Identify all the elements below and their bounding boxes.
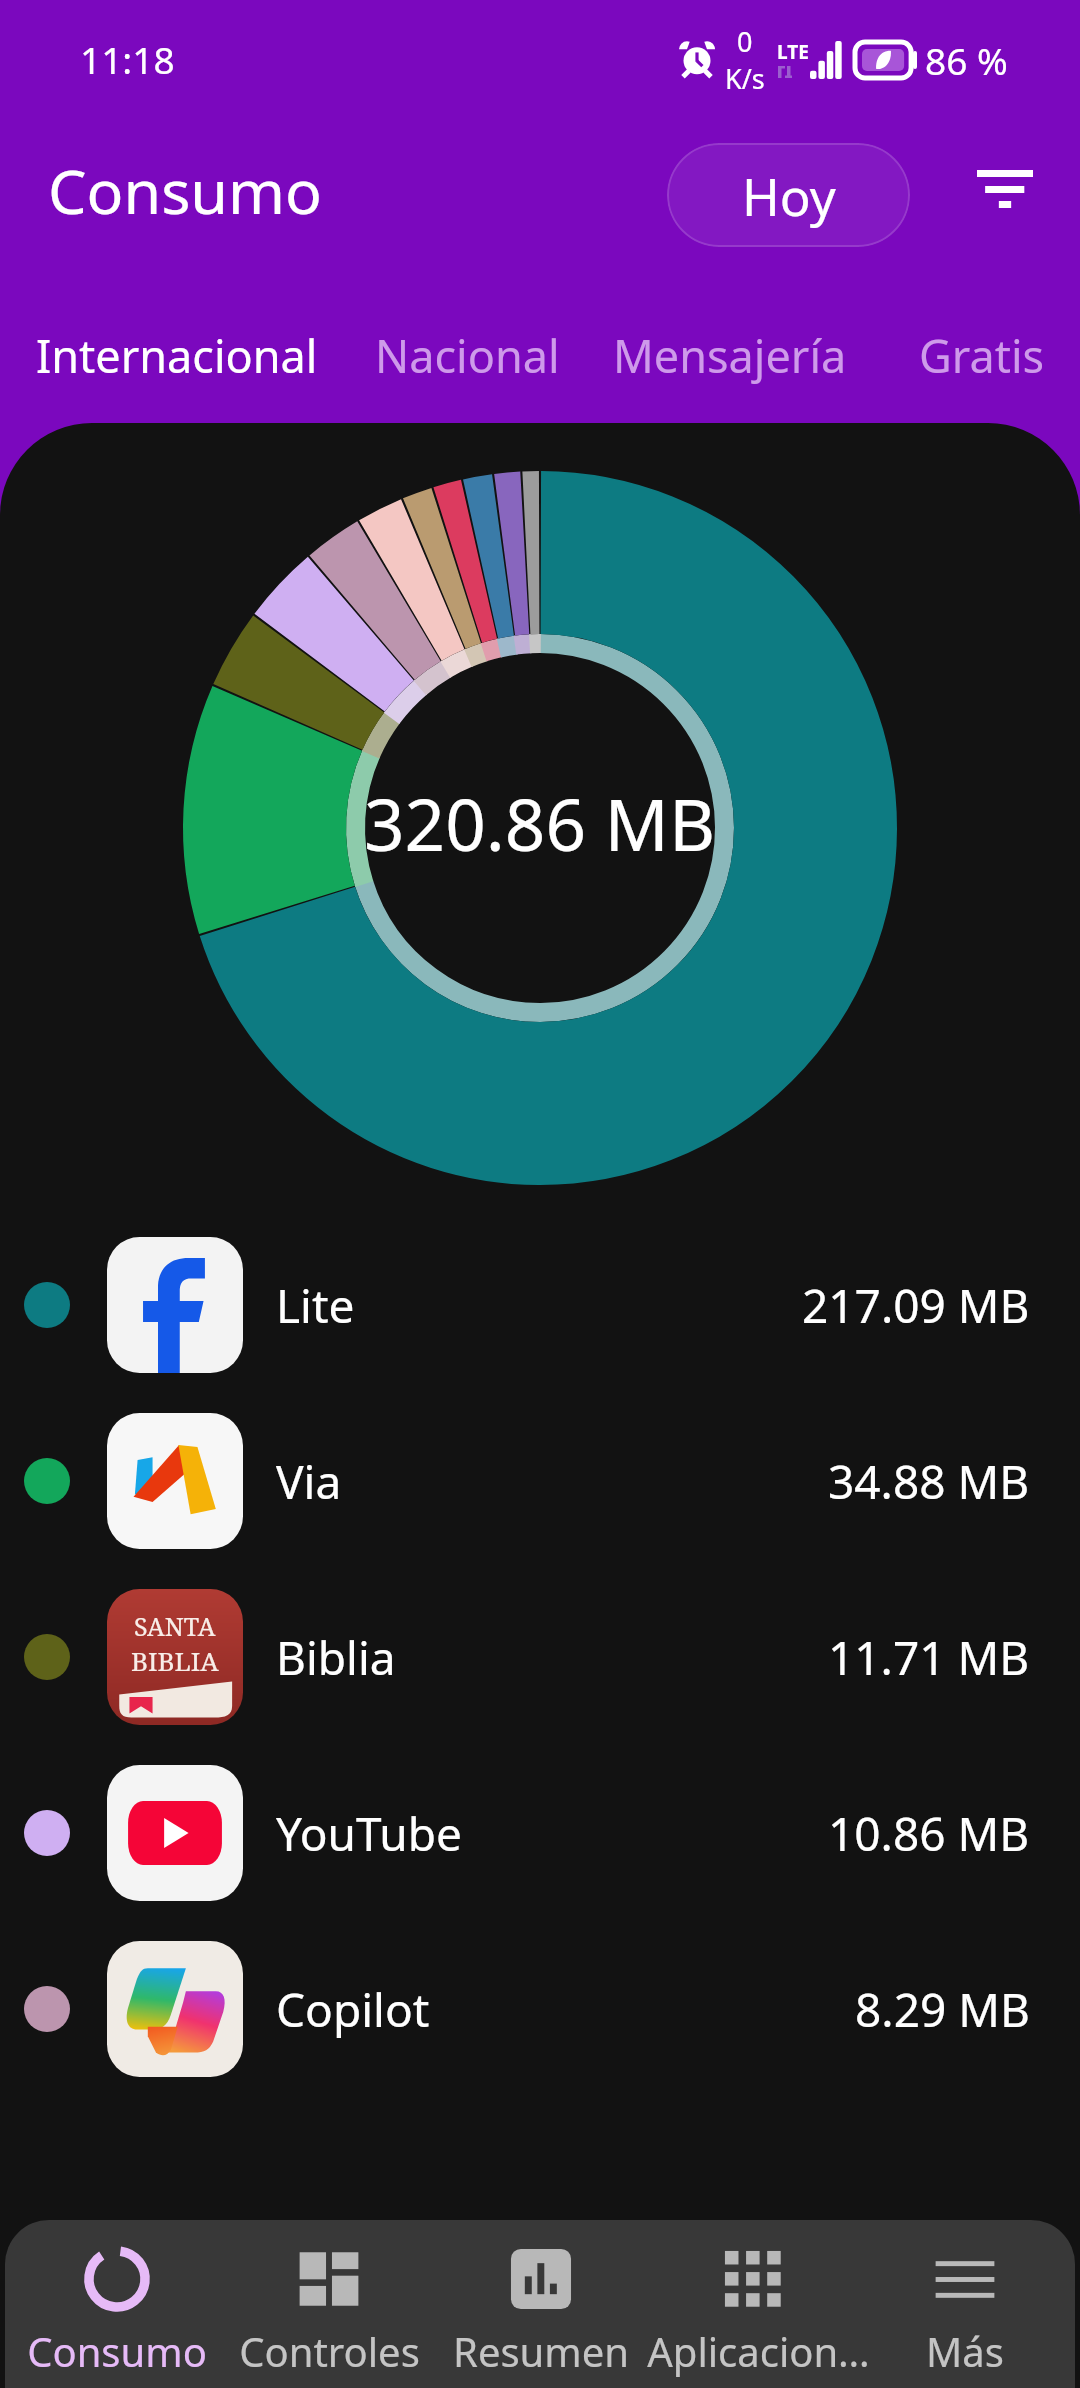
staticText: 86 % [925,35,1008,85]
staticText: Consumo [48,149,323,232]
staticText: Más [926,2324,1004,2378]
staticText: Mensajería [613,325,847,386]
staticText: Nacional [375,325,560,386]
staticText: 34.88 MB [828,1450,1030,1513]
staticText: Consumo [27,2324,207,2378]
staticText: Aplicacion… [647,2324,859,2378]
button[interactable]: Gratis [919,325,1045,386]
staticText: K/s [725,60,765,97]
staticText: 217.09 MB [802,1274,1030,1337]
staticText: 11.71 MB [828,1626,1030,1689]
staticText: YouTube [276,1802,462,1865]
button[interactable]: Mensajería [613,325,847,386]
staticText: BIBLIA [131,1643,219,1678]
staticText: Resumen [453,2324,629,2378]
staticText: Copilot [276,1978,430,2041]
staticText: Biblia [276,1626,396,1689]
button[interactable]: Consumo [11,2246,223,2378]
staticText: Controles [239,2324,420,2378]
staticText: Internacional [36,325,318,386]
staticText: Gratis [919,325,1045,386]
staticText: SANTA [134,1609,216,1643]
staticText: Via [276,1450,342,1513]
button[interactable]: Filtrar [950,140,1060,250]
button[interactable]: Internacional [36,325,318,386]
staticText: 320.86 MB [364,775,716,872]
button[interactable]: Nacional [375,325,560,386]
staticText: 0 [737,23,753,60]
button[interactable]: Lite [0,1217,1080,1393]
staticText: 8.29 MB [855,1978,1030,2041]
button[interactable]: Resumen [435,2246,647,2378]
staticText: Lite [276,1274,355,1337]
button[interactable]: Aplicacion… [647,2246,859,2378]
staticText: Hoy [742,161,836,230]
button[interactable]: Más [859,2246,1071,2378]
button[interactable]: Copilot [0,1921,1080,2097]
staticText: 10.86 MB [828,1802,1030,1865]
button[interactable]: Controles [223,2246,435,2378]
button[interactable]: SANTA [0,1569,1080,1745]
staticText: 11:18 [80,34,175,84]
button[interactable]: YouTube [0,1745,1080,1921]
button[interactable]: Via [0,1393,1080,1569]
button[interactable]: Hoy [667,143,910,247]
staticText: LTE [777,39,809,65]
